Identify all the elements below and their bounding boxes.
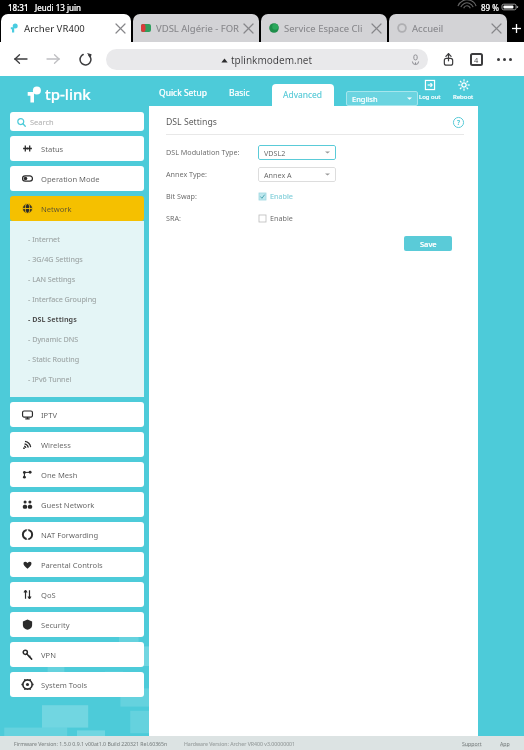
button[interactable]: English [346, 91, 418, 106]
staticText: Bit Swap: [166, 191, 197, 201]
staticText: - Static Routing [28, 354, 80, 364]
staticText: Enable [270, 213, 293, 223]
button[interactable]: Service Espace Cli [261, 14, 387, 42]
staticText: Annex A [264, 170, 292, 180]
staticText: - Interface Grouping [28, 294, 97, 304]
button[interactable]: Enable [259, 191, 293, 201]
button[interactable]: NAT Forwarding [10, 522, 144, 547]
button[interactable]: Basic [229, 87, 250, 99]
staticText: tp-link [45, 84, 91, 104]
button[interactable]: Close tab [241, 21, 255, 35]
staticText: - LAN Settings [28, 274, 76, 284]
button[interactable]: Reload [72, 46, 98, 72]
button[interactable]: - Static Routing [28, 349, 144, 369]
button[interactable]: Save [404, 236, 452, 251]
staticText: Basic [229, 87, 250, 99]
staticText: DSL Settings [166, 116, 217, 128]
staticText: Jeudi 13 juin [35, 2, 81, 13]
button[interactable]: Security [10, 612, 144, 637]
button[interactable]: Log out [419, 79, 441, 101]
staticText: Parental Controls [41, 560, 103, 570]
staticText: 89 % [481, 2, 499, 13]
staticText: VDSL2 [264, 148, 286, 158]
staticText: Hardware Version: Archer VR400 v3.000000… [184, 740, 296, 747]
staticText: Firmware Version: 1.5.0 0.9.1 v00at1.0 B… [14, 740, 168, 747]
staticText: VPN [41, 650, 56, 660]
button[interactable]: Advanced [272, 84, 334, 106]
button[interactable]: Back [8, 46, 34, 72]
staticText: Security [41, 620, 70, 630]
button[interactable]: IPTV [10, 402, 144, 427]
button[interactable]: - Dynamic DNS [28, 329, 144, 349]
staticText: Archer VR400 [24, 22, 113, 35]
button[interactable]: Reboot [453, 79, 474, 101]
staticText: System Tools [41, 680, 88, 690]
button[interactable]: Forward [40, 46, 66, 72]
button[interactable]: Wireless [10, 432, 144, 457]
staticText: Annex Type: [166, 169, 207, 179]
button[interactable]: Accueil [389, 14, 507, 42]
button[interactable]: Operation Mode [10, 166, 144, 191]
button[interactable]: Search [10, 112, 144, 131]
staticText: Wireless [41, 440, 71, 450]
button[interactable]: Guest Network [10, 492, 144, 517]
staticText: SRA: [166, 213, 181, 223]
button[interactable]: Annex A [258, 167, 336, 182]
button[interactable]: Show tabs, 4 open [464, 47, 488, 71]
staticText: Enable [270, 191, 293, 201]
staticText: DSL Modulation Type: [166, 147, 240, 157]
staticText: Reboot [453, 93, 474, 101]
button[interactable]: Close tab [113, 21, 127, 35]
staticText: NAT Forwarding [41, 530, 99, 540]
staticText: Save [420, 239, 437, 249]
button[interactable]: Close tab [489, 21, 503, 35]
button[interactable]: System Tools [10, 672, 144, 697]
button[interactable]: QoS [10, 582, 144, 607]
staticText: Advanced [283, 89, 323, 101]
staticText: Service Espace Cli [284, 22, 369, 35]
staticText: Support [462, 740, 482, 747]
staticText: - 3G/4G Settings [28, 254, 83, 264]
button[interactable]: Status [10, 136, 144, 161]
staticText: QoS [41, 590, 56, 600]
button[interactable]: VPN [10, 642, 144, 667]
staticText: Search [30, 117, 54, 127]
button[interactable]: New tab [508, 14, 524, 42]
button[interactable]: One Mesh [10, 462, 144, 487]
staticText: App [500, 740, 510, 747]
button[interactable]: Close tab [369, 21, 383, 35]
button[interactable]: Quick Setup [159, 87, 207, 99]
button[interactable]: tplinkmodem.net [106, 49, 428, 70]
button[interactable]: - IPv6 Tunnel [28, 369, 144, 389]
staticText: Status [41, 144, 64, 154]
button[interactable]: Support [462, 740, 482, 747]
button[interactable]: Help [453, 117, 464, 128]
staticText: - Internet [28, 234, 60, 244]
staticText: tplinkmodem.net [231, 53, 313, 67]
staticText: Log out [419, 93, 441, 101]
button[interactable]: - DSL Settings [28, 309, 144, 329]
staticText: One Mesh [41, 470, 78, 480]
button[interactable]: VDSL2 [258, 145, 336, 160]
staticText: IPTV [41, 410, 57, 420]
button[interactable]: - LAN Settings [28, 269, 144, 289]
button[interactable]: Share [436, 47, 460, 71]
button[interactable]: App [500, 740, 510, 747]
staticText: Operation Mode [41, 174, 100, 184]
button[interactable]: More [492, 47, 516, 71]
button[interactable]: - Internet [28, 229, 144, 249]
button[interactable]: Archer VR400 [1, 14, 131, 42]
staticText: Quick Setup [159, 87, 207, 99]
staticText: 18:31 [8, 2, 29, 13]
button[interactable]: - 3G/4G Settings [28, 249, 144, 269]
button[interactable]: - Interface Grouping [28, 289, 144, 309]
staticText: 4 [474, 55, 479, 65]
button[interactable]: Enable [259, 213, 293, 223]
staticText: - IPv6 Tunnel [28, 374, 72, 384]
button[interactable]: Network [10, 196, 144, 221]
staticText: ? [457, 118, 461, 127]
button[interactable]: VDSL Algérie - FOR [133, 14, 259, 42]
button[interactable]: Parental Controls [10, 552, 144, 577]
staticText: English [352, 94, 378, 104]
staticText: Accueil [412, 22, 489, 35]
